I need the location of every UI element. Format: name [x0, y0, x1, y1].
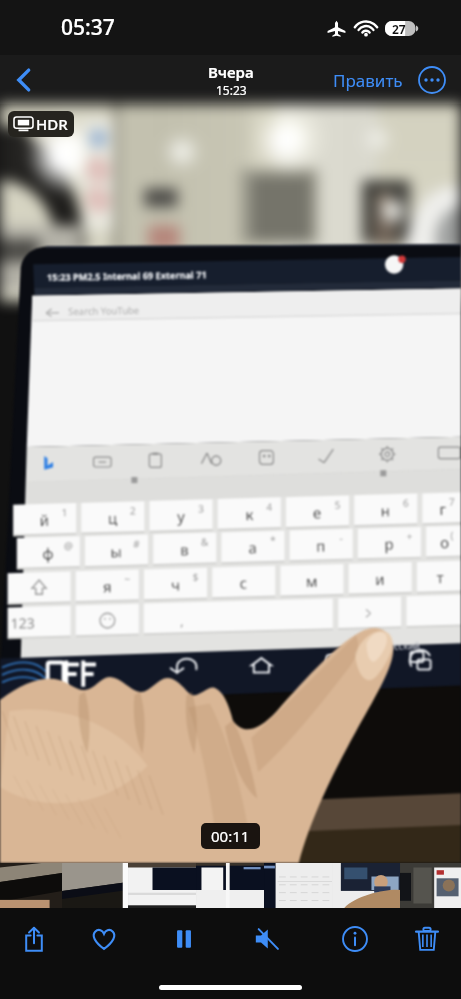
staticText: 05:37	[61, 13, 115, 42]
button[interactable]: More options	[417, 65, 447, 95]
staticText: 27	[392, 21, 406, 36]
button[interactable]: Mute	[241, 913, 293, 965]
staticText: Вчера	[208, 62, 254, 82]
button[interactable]: Info	[329, 913, 381, 965]
staticText: 15:23	[216, 82, 247, 98]
button[interactable]: Share	[8, 913, 60, 965]
staticText: Править	[333, 69, 403, 92]
button[interactable]: Back	[0, 56, 48, 104]
button[interactable]: Править	[329, 69, 407, 92]
button[interactable]: Pause	[158, 913, 210, 965]
button[interactable]: Favorite	[78, 913, 130, 965]
staticText: HDR	[36, 114, 68, 134]
button[interactable]: Video scrubber	[0, 863, 461, 908]
button[interactable]: Delete	[401, 913, 453, 965]
staticText: 00:11	[211, 826, 250, 846]
